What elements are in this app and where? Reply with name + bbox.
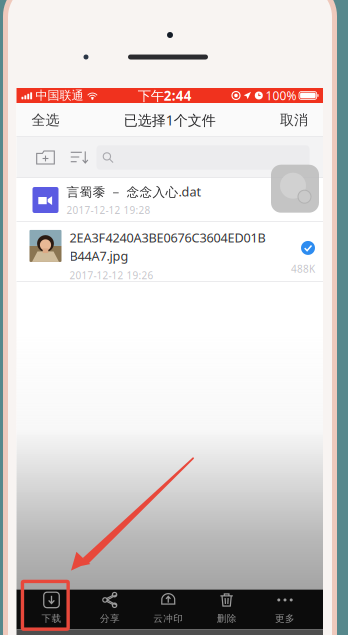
staticText: 下载 bbox=[41, 612, 61, 625]
staticText: 2017-12-12 19:26 bbox=[69, 268, 153, 282]
button[interactable]: Search bbox=[96, 145, 309, 170]
staticText: 2017-12-12 19:28 bbox=[66, 203, 150, 217]
staticText: 已选择1个文件 bbox=[124, 110, 216, 130]
staticText: 2EA3F4240A3BE0676C3604ED01B bbox=[69, 229, 265, 246]
button[interactable]: 下载 bbox=[26, 589, 76, 629]
staticText: 取消 bbox=[280, 111, 308, 129]
button[interactable]: Sort bbox=[62, 137, 96, 178]
button[interactable]: 取消 bbox=[268, 103, 320, 137]
button[interactable]: 言蜀黍 － 念念入心.dat bbox=[16, 178, 323, 222]
button[interactable]: 分享 bbox=[85, 589, 135, 629]
staticText: 分享 bbox=[100, 612, 120, 625]
staticText: 488K bbox=[291, 262, 315, 275]
staticText: 删除 bbox=[217, 612, 237, 625]
button[interactable]: 更多 bbox=[260, 589, 310, 629]
button[interactable]: 云冲印 bbox=[143, 589, 193, 629]
button[interactable]: 2EA3F4240A3BE0676C3604ED01B bbox=[16, 222, 323, 282]
button[interactable]: 全选 bbox=[19, 103, 71, 137]
staticText: 100% bbox=[265, 87, 296, 104]
staticText: B44A7.jpg bbox=[69, 247, 128, 264]
staticText: 更多 bbox=[275, 612, 295, 625]
staticText: 言蜀黍 － 念念入心.dat bbox=[66, 183, 201, 200]
button[interactable]: New folder bbox=[28, 137, 62, 178]
staticText: 下午2:44 bbox=[138, 86, 192, 105]
staticText: 全选 bbox=[31, 111, 59, 129]
staticText: 云冲印 bbox=[153, 612, 183, 625]
staticText: 中国联通 bbox=[36, 88, 84, 103]
button[interactable]: 删除 bbox=[202, 589, 252, 629]
